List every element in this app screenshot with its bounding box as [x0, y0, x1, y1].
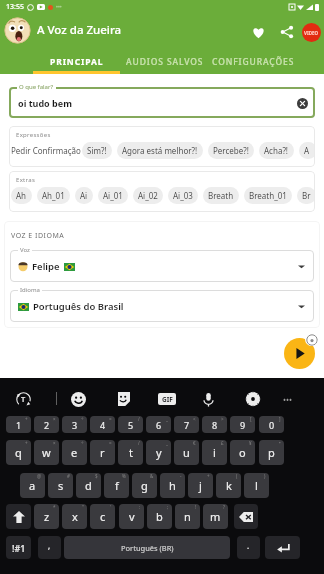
staticText: PRINCIPAL	[50, 56, 104, 68]
button[interactable]: h	[160, 473, 185, 498]
button[interactable]: Ai_01	[98, 187, 128, 204]
staticText: +	[25, 440, 28, 446]
button[interactable]: Ah_01	[37, 187, 70, 204]
button[interactable]: Shift	[6, 504, 31, 529]
button[interactable]: 9	[230, 416, 255, 433]
button[interactable]: 6	[146, 416, 171, 433]
staticText: Ah_01	[42, 190, 65, 201]
button[interactable]: 2	[34, 416, 59, 433]
button[interactable]: b	[147, 504, 172, 529]
button[interactable]: Compartilhar	[276, 21, 298, 43]
button[interactable]: q	[6, 440, 31, 465]
button[interactable]: s	[48, 473, 73, 498]
button[interactable]: t	[118, 440, 143, 465]
button[interactable]: Backspace	[234, 504, 258, 529]
button[interactable]: Percebe?!	[208, 142, 254, 159]
button[interactable]: Br	[297, 187, 315, 204]
button[interactable]: g	[132, 473, 157, 498]
button[interactable]: y	[146, 440, 171, 465]
staticText: $	[95, 473, 98, 479]
staticText: 5	[128, 419, 134, 431]
button[interactable]: Enter	[265, 536, 300, 559]
staticText: *	[53, 504, 56, 510]
button[interactable]: r	[90, 440, 115, 465]
staticText: A série	[304, 145, 312, 156]
button[interactable]: Agora está melhor?!	[117, 142, 203, 159]
button[interactable]: A série	[299, 142, 315, 159]
staticText: b	[156, 509, 163, 524]
button[interactable]: k	[216, 473, 241, 498]
button[interactable]: CONFIGURAÇÕES	[209, 50, 298, 74]
button[interactable]: Traduzir	[11, 387, 35, 411]
button[interactable]: Breath	[203, 187, 239, 204]
staticText: g	[141, 478, 148, 493]
staticText: Expressões	[16, 131, 51, 139]
button[interactable]: Limpar	[294, 95, 310, 111]
button[interactable]: Emoji	[66, 387, 90, 411]
staticText: k	[226, 478, 232, 493]
button[interactable]: 1	[6, 416, 31, 433]
button[interactable]: l	[244, 473, 269, 498]
button[interactable]: Português (BR)	[64, 536, 230, 559]
button[interactable]: Video	[300, 21, 322, 43]
button[interactable]: Mais opções	[276, 387, 300, 411]
button[interactable]: 4	[90, 416, 115, 433]
button[interactable]: Favoritos	[247, 21, 269, 43]
button[interactable]: Pedir Confirmação	[11, 142, 81, 159]
staticText: +	[207, 473, 210, 479]
button[interactable]: m	[203, 504, 228, 529]
button[interactable]: GIF	[158, 393, 176, 405]
button[interactable]: 7	[174, 416, 199, 433]
staticText: !	[195, 504, 197, 510]
button[interactable]: a	[20, 473, 45, 498]
button[interactable]: 0	[259, 416, 284, 433]
button[interactable]: n	[175, 504, 200, 529]
staticText: '	[110, 504, 112, 510]
button[interactable]: i	[202, 440, 227, 465]
button[interactable]: Ponto	[237, 536, 260, 559]
button[interactable]: PRINCIPAL	[33, 50, 121, 74]
button[interactable]: 5	[118, 416, 143, 433]
button[interactable]: Ai	[75, 187, 93, 204]
button[interactable]: Breath_01	[244, 187, 292, 204]
button[interactable]: Felipe	[10, 250, 314, 282]
button[interactable]: Microfone	[196, 387, 220, 411]
staticText: %	[122, 473, 126, 479]
button[interactable]: c	[90, 504, 115, 529]
button[interactable]: 8	[202, 416, 227, 433]
button[interactable]: !#1	[6, 536, 31, 559]
button[interactable]: Ai_02	[133, 187, 163, 204]
staticText: O que falar?	[19, 83, 54, 91]
button[interactable]: e	[62, 440, 87, 465]
staticText: CONFIGURAÇÕES	[212, 56, 295, 68]
button[interactable]: Configurações	[241, 387, 265, 411]
staticText: f	[115, 478, 119, 493]
button[interactable]: w	[34, 440, 59, 465]
button[interactable]: Ai_03	[168, 187, 198, 204]
button[interactable]: p	[259, 440, 284, 465]
button[interactable]: Acha?!	[259, 142, 294, 159]
button[interactable]: 3	[62, 416, 87, 433]
button[interactable]: u	[174, 440, 199, 465]
button[interactable]: Stickers	[111, 387, 135, 411]
button[interactable]: Ajuda	[305, 333, 318, 346]
button[interactable]: x	[62, 504, 87, 529]
staticText: _	[166, 440, 168, 446]
button[interactable]: Reproduzir	[284, 338, 315, 369]
staticText: Português do Brasil	[33, 300, 124, 313]
button[interactable]: Vírgula	[38, 536, 61, 559]
button[interactable]: v	[119, 504, 144, 529]
button[interactable]: j	[188, 473, 213, 498]
staticText: GIF	[162, 395, 173, 404]
button[interactable]: o	[230, 440, 255, 465]
button[interactable]: f	[104, 473, 129, 498]
staticText: Sim?!	[87, 145, 107, 156]
button[interactable]: Ah	[11, 187, 32, 204]
button[interactable]: oi tudo bem	[9, 87, 315, 118]
staticText: ;	[167, 504, 169, 510]
button[interactable]: Sim?!	[82, 142, 112, 159]
button[interactable]: AUDIOS SALVOS	[121, 50, 209, 74]
button[interactable]: z	[34, 504, 59, 529]
button[interactable]: d	[76, 473, 101, 498]
button[interactable]: Português do Brasil	[10, 290, 314, 322]
